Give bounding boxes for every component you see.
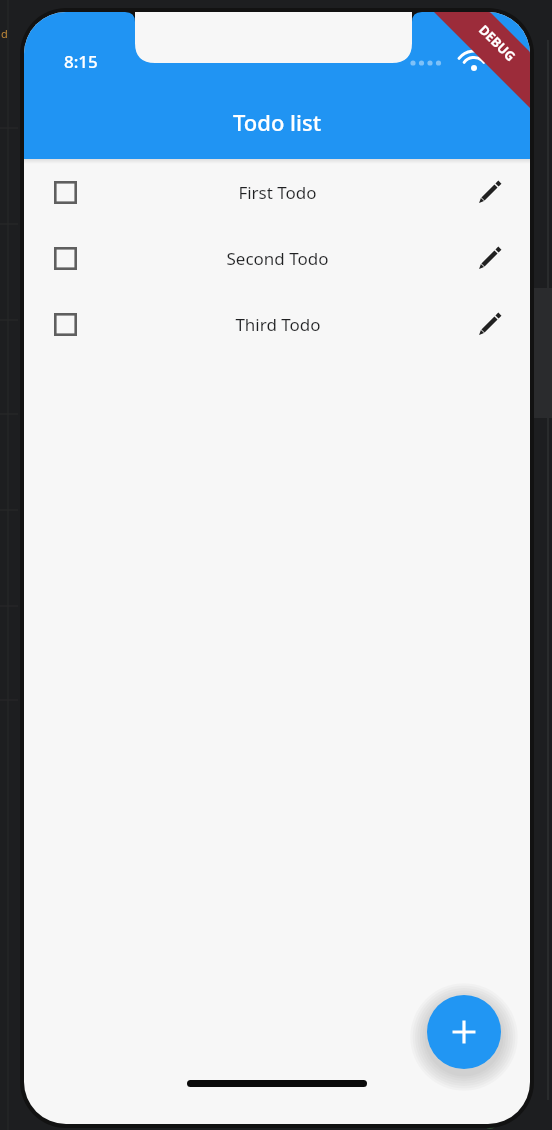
staticText: d (1, 26, 8, 41)
staticText: 8:15 (64, 50, 98, 73)
button[interactable]: Toggle Second Todo (45, 238, 85, 278)
button[interactable]: Edit Third Todo (470, 304, 510, 344)
button[interactable]: Add todo (427, 995, 501, 1069)
button[interactable]: Edit Second Todo (470, 238, 510, 278)
button[interactable]: Toggle First Todo (45, 172, 85, 212)
button[interactable]: Toggle First Todo (24, 159, 530, 225)
staticText: Todo list (233, 107, 322, 137)
button[interactable]: Toggle Second Todo (24, 225, 530, 291)
button[interactable]: Edit First Todo (470, 172, 510, 212)
staticText: DEBUG (475, 21, 520, 65)
button[interactable]: Toggle Third Todo (24, 291, 530, 357)
button[interactable]: Toggle Third Todo (45, 304, 85, 344)
staticText: Third Todo (235, 313, 321, 336)
staticText: Second Todo (226, 247, 329, 270)
staticText: First Todo (238, 181, 317, 204)
